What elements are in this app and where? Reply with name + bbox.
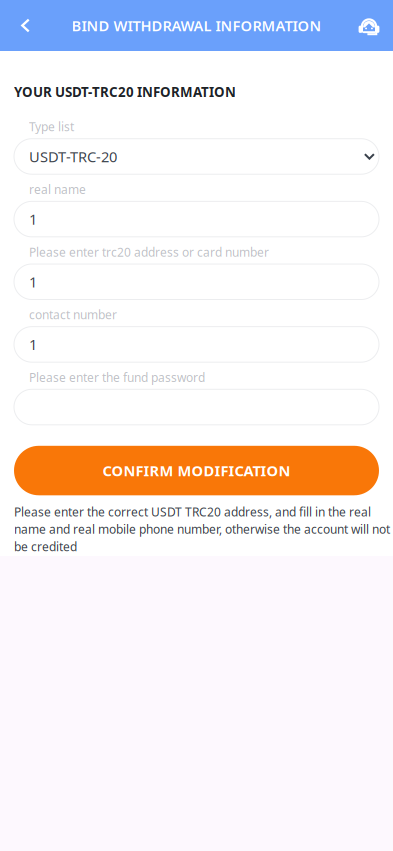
button[interactable]: Customer service [345, 0, 393, 51]
staticText: Type list [29, 119, 74, 135]
staticText: name and real mobile phone number, other… [14, 521, 390, 537]
staticText: contact number [29, 307, 117, 323]
staticText: BIND WITHDRAWAL INFORMATION [71, 16, 321, 35]
staticText: CONFIRM MODIFICATION [102, 461, 290, 480]
staticText: 1 [29, 209, 37, 229]
button[interactable]: CONFIRM MODIFICATION [14, 446, 379, 495]
staticText: Please enter the correct USDT TRC20 addr… [14, 504, 371, 520]
staticText: Please enter the fund password [29, 369, 205, 385]
staticText: Please enter trc20 address or card numbe… [29, 244, 269, 260]
staticText: be credited [14, 539, 77, 555]
staticText: USDT-TRC-20 [29, 147, 117, 166]
staticText: 1 [29, 272, 37, 291]
staticText: 1 [29, 335, 37, 354]
staticText: YOUR USDT-TRC20 INFORMATION [14, 83, 236, 101]
button[interactable]: Back [0, 0, 48, 51]
staticText: real name [29, 181, 86, 197]
